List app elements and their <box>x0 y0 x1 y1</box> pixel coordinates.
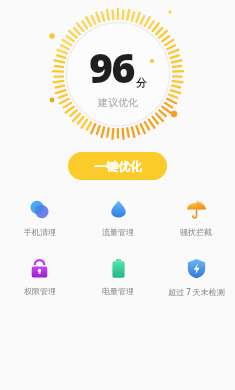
button[interactable]: 手机清理 <box>0 197 79 239</box>
button[interactable]: 流量管理 <box>79 197 157 239</box>
button[interactable]: 骚扰拦截 <box>157 197 235 239</box>
staticText: 96 <box>89 39 135 95</box>
staticText: 分 <box>136 76 147 90</box>
staticText: 流量管理 <box>102 227 134 237</box>
staticText: 建议优化 <box>98 96 138 109</box>
staticText: 权限管理 <box>24 286 56 296</box>
staticText: 手机清理 <box>24 227 56 237</box>
button[interactable]: 超过 7 天未检测 <box>157 256 235 299</box>
staticText: 电量管理 <box>102 286 134 296</box>
staticText: 超过 7 天未检测 <box>168 286 225 297</box>
staticText: 骚扰拦截 <box>180 227 212 237</box>
button[interactable]: 权限管理 <box>0 256 79 298</box>
staticText: 一键优化 <box>94 159 142 174</box>
button[interactable]: 电量管理 <box>79 256 157 298</box>
button[interactable]: 一键优化 <box>68 152 167 180</box>
